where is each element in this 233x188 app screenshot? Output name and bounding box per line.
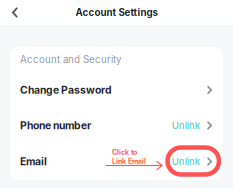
staticText: Email xyxy=(20,155,47,168)
staticText: Phone number xyxy=(20,119,91,132)
staticText: Link Email xyxy=(112,157,146,165)
button[interactable]: Phone number xyxy=(10,108,223,143)
staticText: Click to xyxy=(112,148,137,156)
staticText: Account Settings xyxy=(75,7,157,18)
staticText: Unlink xyxy=(172,156,200,167)
staticText: Unlink xyxy=(172,120,200,131)
staticText: Change Password xyxy=(20,84,112,96)
staticText: Account and Security xyxy=(20,54,121,65)
button[interactable]: Email xyxy=(10,143,223,180)
button[interactable]: Back xyxy=(0,1,26,24)
button[interactable]: Change Password xyxy=(10,72,223,108)
